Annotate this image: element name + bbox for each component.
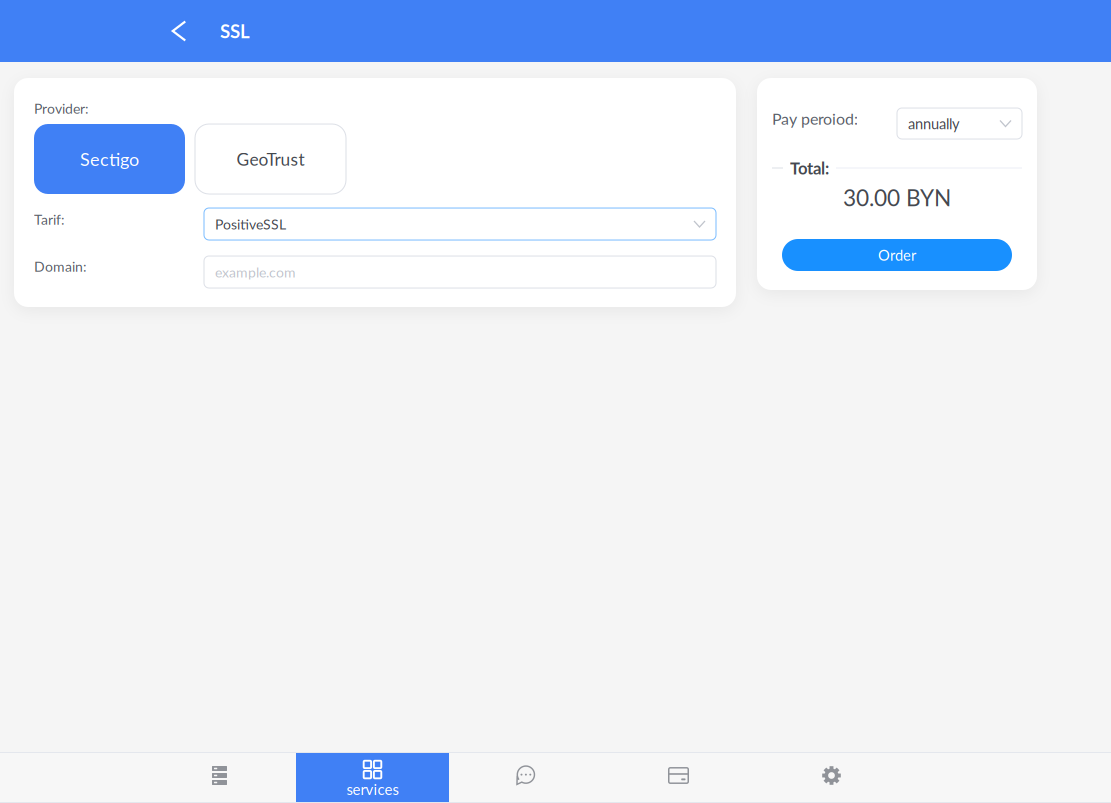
- staticText: Sectigo: [80, 148, 139, 170]
- staticText: 30.00 BYN: [843, 184, 951, 211]
- button[interactable]: Back: [160, 8, 198, 54]
- staticText: SSL: [220, 20, 250, 42]
- staticText: Domain:: [34, 258, 87, 275]
- button[interactable]: PositiveSSL: [204, 208, 716, 240]
- staticText: PositiveSSL: [215, 216, 286, 232]
- button[interactable]: Services: [296, 753, 449, 802]
- staticText: Total:: [790, 158, 829, 178]
- staticText: GeoTrust: [236, 149, 304, 169]
- button[interactable]: Settings: [755, 753, 908, 802]
- button[interactable]: Servers: [143, 753, 296, 802]
- button[interactable]: GeoTrust: [195, 124, 346, 194]
- staticText: Order: [878, 246, 916, 264]
- staticText: Pay peroiod:: [772, 109, 858, 128]
- button[interactable]: Messages: [449, 753, 602, 802]
- button[interactable]: Sectigo: [34, 124, 185, 194]
- button[interactable]: Order: [782, 239, 1012, 271]
- staticText: Tarif:: [34, 211, 65, 228]
- button[interactable]: annually: [897, 108, 1022, 139]
- staticText: example.com: [215, 264, 296, 280]
- button[interactable]: Billing: [602, 753, 755, 802]
- button[interactable]: example.com: [204, 256, 716, 288]
- staticText: services: [346, 780, 398, 798]
- staticText: annually: [908, 115, 960, 132]
- staticText: Provider:: [34, 100, 89, 117]
